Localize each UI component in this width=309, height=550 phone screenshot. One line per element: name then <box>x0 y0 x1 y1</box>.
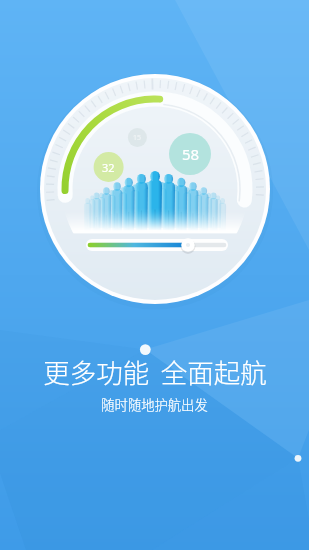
staticText: 32 <box>102 160 115 175</box>
staticText: 更多功能 全面起航 <box>43 352 267 390</box>
staticText: 15 <box>133 133 142 143</box>
button[interactable]: 32 <box>0 0 309 550</box>
staticText: 随时随地护航出发 <box>101 395 208 414</box>
staticText: 58 <box>182 144 200 164</box>
